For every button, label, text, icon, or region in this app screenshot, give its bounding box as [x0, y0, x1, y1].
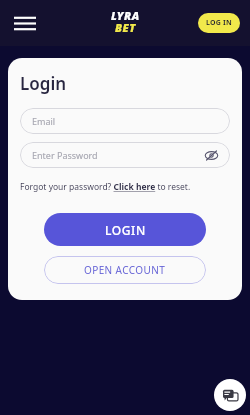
button[interactable]: Enter Password — [20, 142, 230, 168]
button[interactable]: Menu — [10, 8, 40, 38]
other: Show password — [204, 148, 218, 162]
staticText: LOGIN — [105, 222, 146, 238]
button[interactable]: LOG IN — [198, 13, 240, 33]
button[interactable]: OPEN ACCOUNT — [44, 256, 206, 284]
button[interactable]: Chat support — [214, 379, 246, 411]
button[interactable]: LYRA — [111, 8, 140, 38]
staticText: Email — [32, 115, 56, 127]
button[interactable]: Forgot your password? Click here to rese… — [20, 181, 230, 193]
staticText: Forgot your password? Click here to rese… — [20, 181, 191, 193]
button[interactable]: LOGIN — [44, 213, 206, 246]
staticText: LOG IN — [206, 18, 232, 28]
staticText: Enter Password — [32, 149, 98, 161]
staticText: LYRA — [111, 8, 140, 23]
staticText: BET — [115, 20, 136, 35]
button[interactable]: Email — [20, 108, 230, 134]
staticText: OPEN ACCOUNT — [84, 263, 166, 277]
staticText: Login — [20, 72, 67, 95]
